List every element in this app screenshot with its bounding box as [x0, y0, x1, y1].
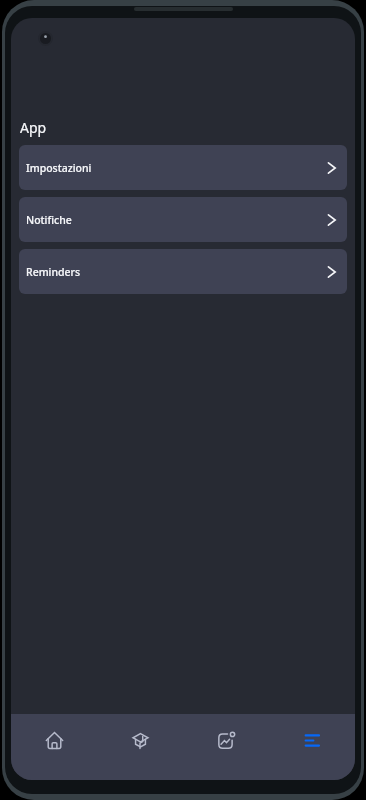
button[interactable]: Reminders [19, 249, 347, 294]
button[interactable]: Home [11, 714, 97, 766]
staticText: App [20, 118, 47, 137]
button[interactable]: Courses [97, 714, 183, 766]
button[interactable]: Impostazioni [19, 145, 347, 190]
staticText: Reminders [26, 265, 81, 279]
button[interactable]: Notifiche [19, 197, 347, 242]
button[interactable]: Statistics [183, 714, 269, 766]
staticText: Impostazioni [26, 161, 92, 175]
button[interactable]: Menu [269, 714, 355, 766]
staticText: Notifiche [26, 213, 72, 227]
